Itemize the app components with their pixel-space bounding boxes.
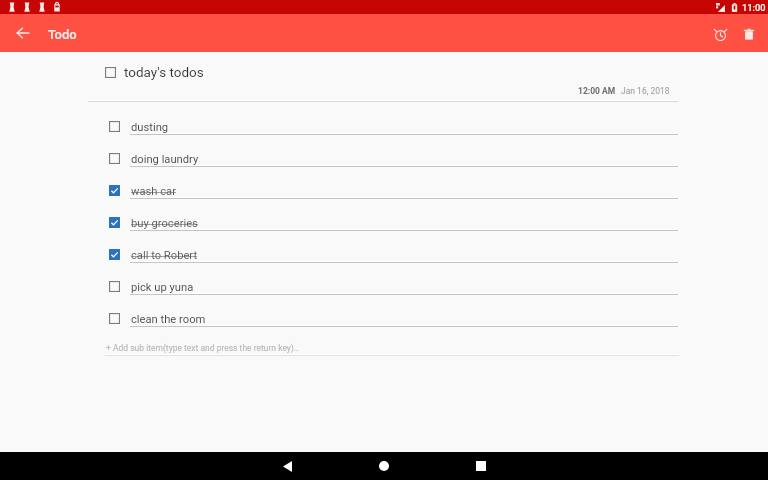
staticText: Jan 16, 2018 <box>621 86 670 96</box>
button[interactable]: Toggle item <box>105 64 204 80</box>
staticText: dusting <box>131 121 169 134</box>
staticText: doing laundry <box>131 153 199 166</box>
button[interactable]: Delete <box>735 20 763 48</box>
button[interactable]: Toggle item <box>109 102 679 134</box>
staticText: Todo <box>48 27 77 42</box>
button[interactable]: Toggle item <box>109 230 679 262</box>
button[interactable]: Toggle item <box>109 217 120 228</box>
button[interactable]: Toggle item <box>109 294 679 326</box>
button[interactable]: Toggle item <box>109 313 120 324</box>
button[interactable]: Toggle item <box>109 153 120 164</box>
staticText: wash car <box>131 185 176 198</box>
staticText: clean the room <box>131 313 206 326</box>
button[interactable]: Toggle item <box>109 249 120 260</box>
button[interactable]: Toggle item <box>109 198 679 230</box>
button[interactable]: Toggle item <box>109 134 679 166</box>
button[interactable]: Toggle item <box>109 262 679 294</box>
staticText: pick up yuna <box>131 281 194 294</box>
staticText: 12:00 AM <box>578 86 616 96</box>
button[interactable]: Navigate up <box>9 19 37 47</box>
button[interactable]: Toggle item <box>109 166 679 198</box>
staticText: buy groceries <box>131 217 198 230</box>
button[interactable]: + Add sub item(type text and press the r… <box>104 338 404 358</box>
button[interactable]: Set alarm <box>706 20 734 48</box>
staticText: call to Robert <box>131 249 198 262</box>
staticText: + Add sub item(type text and press the r… <box>106 343 299 353</box>
button[interactable]: Recent apps <box>467 452 495 480</box>
button[interactable]: Toggle item <box>105 67 116 78</box>
button[interactable]: Home <box>370 452 398 480</box>
button[interactable]: Back <box>273 452 301 480</box>
staticText: 11:00 <box>742 2 766 13</box>
staticText: today's todos <box>124 64 204 80</box>
button[interactable]: Toggle item <box>109 185 120 196</box>
button[interactable]: Toggle item <box>109 121 120 132</box>
button[interactable]: Toggle item <box>109 281 120 292</box>
